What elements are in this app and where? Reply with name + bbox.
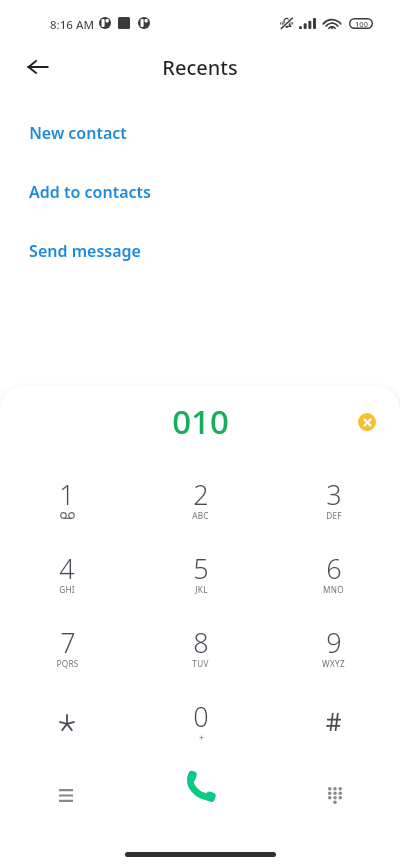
staticText: Add to contacts	[29, 181, 151, 203]
staticText: 9	[326, 624, 342, 661]
staticText: Recents	[162, 54, 238, 81]
staticText: +	[199, 732, 204, 743]
staticText: GHI	[59, 584, 75, 595]
staticText: TUV	[192, 658, 209, 669]
staticText: JKL	[195, 584, 208, 595]
staticText: WXYZ	[322, 658, 345, 669]
staticText: 0	[193, 698, 209, 735]
staticText: 2	[193, 476, 209, 513]
button[interactable]: 3	[267, 476, 400, 550]
staticText: 5	[193, 550, 209, 587]
button[interactable]: Delete	[350, 405, 384, 439]
button[interactable]: 9	[267, 624, 400, 698]
button[interactable]: New contact	[0, 115, 400, 151]
staticText: 3	[326, 476, 342, 513]
staticText: New contact	[29, 122, 127, 144]
staticText: MNO	[323, 584, 344, 595]
button[interactable]: Call	[134, 762, 267, 818]
staticText: 8:16 AM	[50, 17, 94, 33]
button[interactable]: 4	[0, 550, 134, 624]
button[interactable]: 2	[134, 476, 267, 550]
button[interactable]: 5	[134, 550, 267, 624]
staticText: 010	[172, 399, 229, 444]
staticText: 100	[355, 19, 368, 29]
button[interactable]: 8	[134, 624, 267, 698]
button[interactable]: 7	[0, 624, 134, 698]
button[interactable]	[0, 698, 134, 772]
staticText: 4	[59, 550, 75, 587]
button[interactable]: Add to contacts	[0, 174, 400, 210]
button[interactable]: Back	[19, 48, 57, 86]
button[interactable]: 0	[134, 698, 267, 772]
staticText: 1	[59, 476, 75, 513]
button[interactable]: 1	[0, 476, 134, 550]
button[interactable]: Dialpad	[267, 762, 400, 818]
button[interactable]: Menu	[0, 762, 134, 818]
button[interactable]	[267, 698, 400, 772]
staticText: 8	[193, 624, 209, 661]
staticText: 7	[60, 624, 76, 661]
staticText: PQRS	[56, 658, 79, 669]
button[interactable]: Send message	[0, 233, 400, 269]
staticText: Send message	[29, 240, 141, 262]
button[interactable]: 6	[267, 550, 400, 624]
staticText: 6	[326, 550, 342, 587]
staticText: ABC	[192, 510, 209, 521]
staticText: DEF	[326, 510, 342, 521]
